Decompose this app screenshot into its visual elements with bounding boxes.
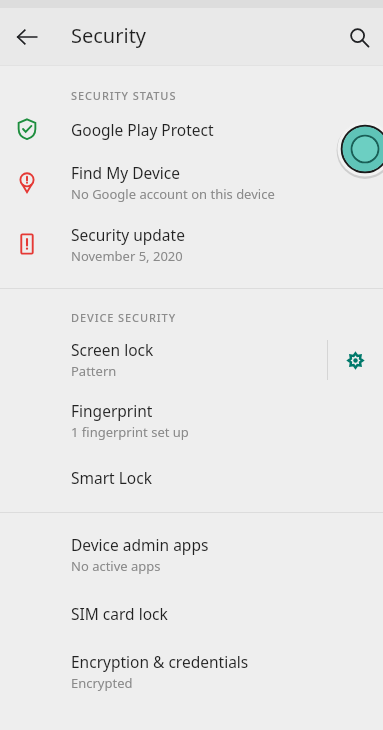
staticText: Fingerprint	[71, 400, 153, 421]
staticText: Smart Lock	[71, 467, 152, 488]
staticText: SECURITY STATUS	[71, 88, 177, 103]
staticText: No Google account on this device	[71, 185, 275, 203]
button[interactable]: Back	[6, 16, 48, 58]
button[interactable]: Fingerprint	[0, 390, 383, 451]
staticText: Device admin apps	[71, 534, 209, 555]
button[interactable]: Device admin apps	[0, 524, 383, 585]
button[interactable]: Screen lock settings	[333, 338, 377, 382]
staticText: Google Play Protect	[71, 119, 214, 140]
staticText: SIM card lock	[71, 603, 168, 624]
button[interactable]: Security update	[0, 213, 383, 275]
staticText: DEVICE SECURITY	[71, 310, 177, 325]
button[interactable]: Search	[338, 16, 380, 58]
button[interactable]: SIM card lock	[0, 585, 383, 641]
staticText: Security	[71, 22, 147, 49]
button[interactable]: Encryption & credentials	[0, 641, 383, 702]
button[interactable]: Smart Lock	[0, 451, 383, 503]
staticText: Security update	[71, 224, 185, 245]
staticText: No active apps	[71, 557, 161, 575]
staticText: Find My Device	[71, 162, 180, 183]
staticText: November 5, 2020	[71, 247, 183, 265]
staticText: Encrypted	[71, 674, 133, 692]
button[interactable]: Screen lock	[0, 329, 327, 390]
button[interactable]: Google Play Protect	[0, 107, 383, 151]
staticText: Screen lock	[71, 339, 154, 360]
button[interactable]: Find My Device	[0, 151, 383, 213]
staticText: Pattern	[71, 362, 117, 380]
staticText: 1 fingerprint set up	[71, 423, 189, 441]
staticText: Encryption & credentials	[71, 651, 249, 672]
